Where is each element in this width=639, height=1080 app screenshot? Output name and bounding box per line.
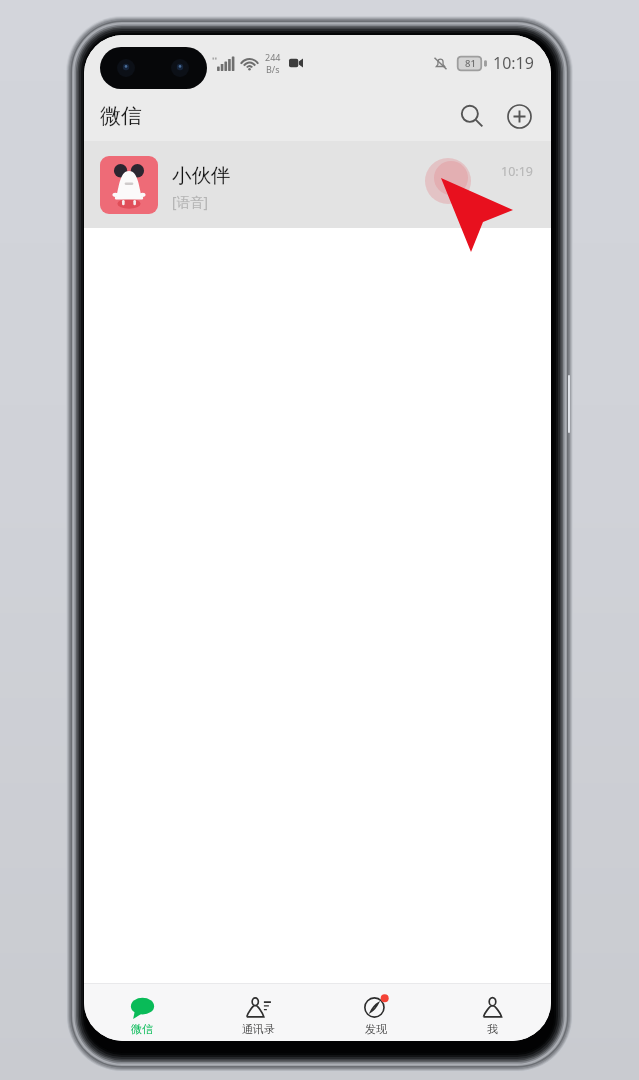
staticText: 小伙伴 bbox=[172, 163, 231, 188]
button[interactable]: 我 bbox=[434, 984, 551, 1038]
button[interactable]: Add bbox=[498, 95, 540, 137]
staticText: 10:19 bbox=[493, 52, 534, 74]
staticText: 244 bbox=[265, 51, 281, 63]
button[interactable]: 通讯录 bbox=[200, 984, 317, 1038]
staticText: 10:19 bbox=[501, 163, 533, 180]
button[interactable]: 微信 bbox=[84, 984, 200, 1038]
button[interactable]: Search bbox=[451, 95, 493, 137]
staticText: 通讯录 bbox=[242, 1022, 275, 1036]
staticText: 微信 bbox=[131, 1022, 153, 1036]
button[interactable]: 小伙伴 bbox=[84, 141, 551, 228]
staticText: B/s bbox=[266, 63, 280, 75]
staticText: 微信 bbox=[100, 103, 142, 129]
staticText: 81 bbox=[465, 57, 476, 70]
staticText: 发现 bbox=[365, 1022, 387, 1036]
staticText: [语音] bbox=[172, 193, 208, 211]
button[interactable]: 发现 bbox=[317, 984, 434, 1038]
staticText: 我 bbox=[487, 1022, 498, 1036]
